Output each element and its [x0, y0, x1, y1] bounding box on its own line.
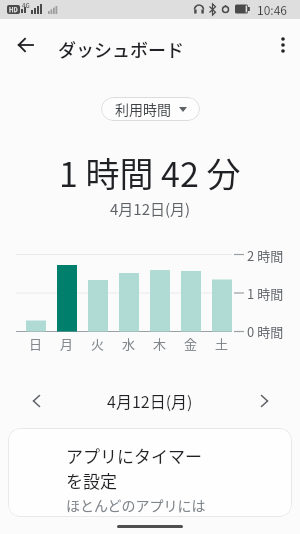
staticText: 月 [60, 334, 74, 353]
staticText: 木 [153, 334, 167, 353]
staticText: 4月12日(月) [107, 389, 193, 412]
staticText: を設定 [66, 468, 117, 493]
button[interactable]: 利用時間 [101, 97, 200, 121]
staticText: 1 時間 42 分 [59, 148, 241, 197]
staticText: アプリにタイマー [66, 443, 202, 468]
staticText: HD [9, 5, 18, 14]
staticText: 2 時間 [247, 246, 284, 265]
staticText: 火 [91, 334, 105, 353]
button[interactable] [10, 30, 40, 60]
staticText: 4G [22, 1, 30, 10]
staticText: 水 [122, 334, 136, 353]
staticText: 利用時間 [115, 99, 171, 119]
button[interactable] [250, 387, 278, 415]
staticText: 1 時間 [247, 284, 284, 303]
button[interactable] [268, 30, 298, 60]
staticText: ダッシュボード [58, 36, 184, 62]
staticText: 10:46 [257, 1, 287, 18]
staticText: 4月12日(月) [110, 198, 191, 220]
staticText: 金 [184, 334, 198, 353]
button[interactable]: アプリにタイマー [8, 428, 292, 517]
staticText: 日 [29, 334, 43, 353]
button[interactable] [22, 387, 50, 415]
staticText: ほとんどのアプリには [66, 495, 206, 515]
staticText: 土 [215, 334, 229, 353]
staticText: 0 時間 [247, 322, 284, 341]
